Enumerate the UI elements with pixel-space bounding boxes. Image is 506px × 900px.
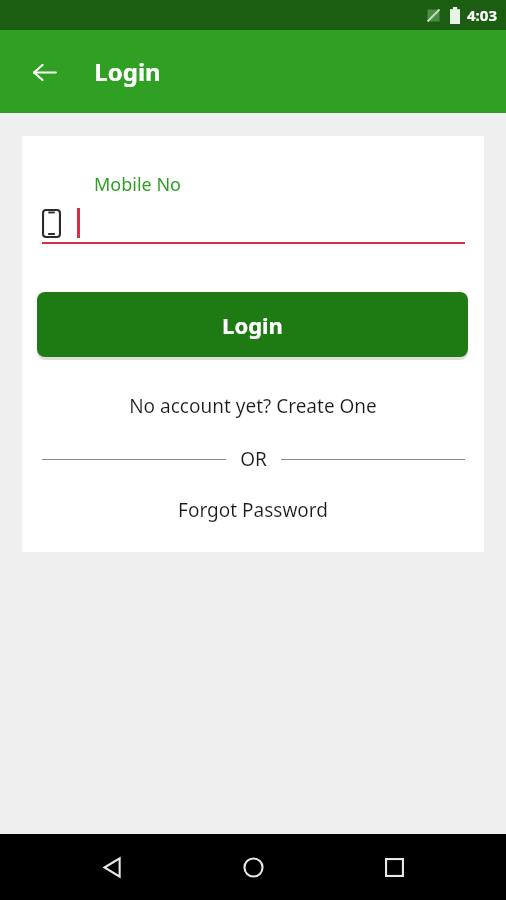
staticText: Forgot Password xyxy=(178,497,328,523)
button[interactable]: Recent apps xyxy=(365,838,423,896)
button[interactable]: No account yet? Create One xyxy=(22,393,484,419)
button[interactable]: Forgot Password xyxy=(22,497,484,523)
staticText: No account yet? Create One xyxy=(129,393,377,419)
button[interactable]: Back xyxy=(83,838,141,896)
button[interactable]: Login xyxy=(37,292,468,357)
button[interactable] xyxy=(42,204,465,242)
button[interactable]: Home xyxy=(224,838,282,896)
staticText: Login xyxy=(94,55,161,88)
staticText: Login xyxy=(222,310,283,340)
staticText: Mobile No xyxy=(94,172,181,197)
button[interactable]: Back xyxy=(20,48,68,96)
staticText: OR xyxy=(240,446,267,472)
staticText: 4:03 xyxy=(467,5,497,25)
